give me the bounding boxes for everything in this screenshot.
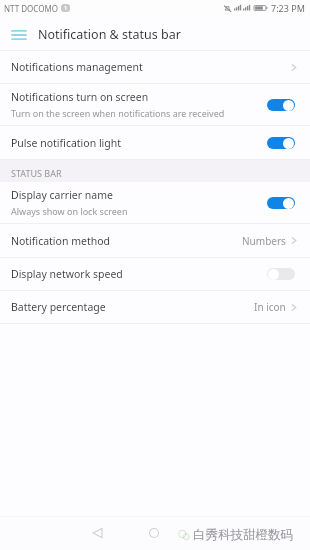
staticText: Numbers — [242, 234, 286, 248]
button[interactable]: Battery percentage — [0, 291, 310, 324]
button[interactable]: Display carrier name — [0, 182, 310, 224]
button[interactable]: Display network speed — [0, 258, 310, 291]
button[interactable]: Home — [139, 518, 169, 548]
button[interactable]: Notifications management — [0, 51, 310, 84]
staticText: Battery percentage — [11, 300, 106, 314]
staticText: Notification method — [11, 234, 110, 248]
button[interactable]: Toggle — [267, 99, 295, 111]
staticText: In icon — [254, 300, 286, 314]
staticText: Display network speed — [11, 267, 123, 281]
staticText: Notification & status bar — [38, 26, 181, 43]
staticText: 白秀科技甜橙数码 — [193, 527, 293, 543]
staticText: NTT DOCOMO — [4, 3, 58, 14]
staticText: Notifications turn on screen — [11, 90, 149, 104]
staticText: Pulse notification light — [11, 136, 122, 150]
button[interactable]: Notifications turn on screen — [0, 84, 310, 126]
staticText: STATUS BAR — [11, 167, 62, 179]
button[interactable]: Pulse notification light — [0, 126, 310, 160]
staticText: 7:23 PM — [271, 2, 305, 14]
staticText: Turn on the screen when notifications ar… — [11, 107, 225, 119]
staticText: Display carrier name — [11, 188, 113, 202]
staticText: 1 — [64, 4, 68, 12]
button[interactable]: Recents — [196, 518, 226, 548]
button[interactable]: Notification method — [0, 224, 310, 258]
button[interactable]: Toggle — [267, 197, 295, 209]
button[interactable]: Toggle — [267, 137, 295, 149]
button[interactable]: Toggle — [267, 268, 295, 280]
staticText: Notifications management — [11, 60, 143, 74]
button[interactable]: Menu — [0, 19, 38, 50]
staticText: Always show on lock screen — [11, 205, 128, 217]
button[interactable]: Back — [82, 518, 112, 548]
